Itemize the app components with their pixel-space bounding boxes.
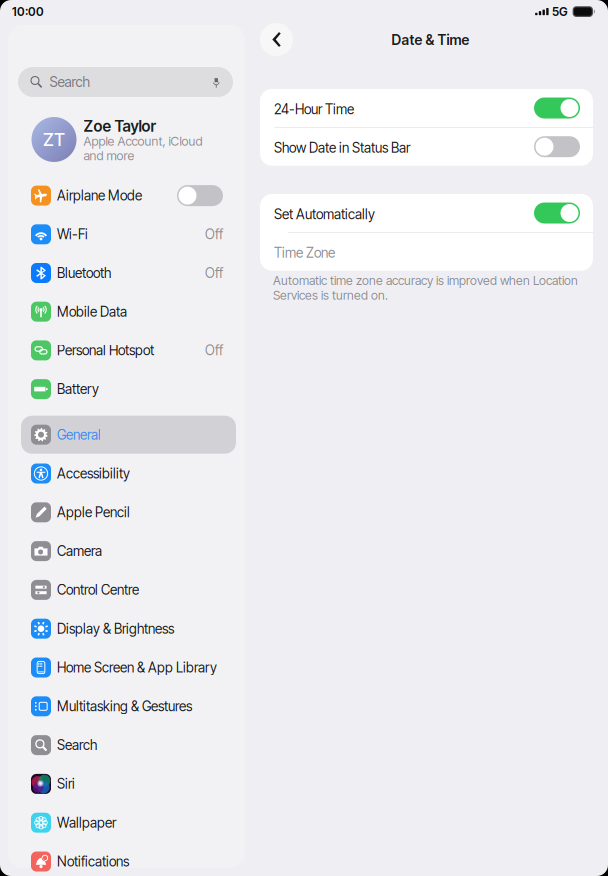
button[interactable]: Home Screen & App Library [21,648,236,686]
button[interactable]: Display & Brightness [21,610,236,648]
button[interactable]: Wallpaper [21,804,236,842]
button[interactable]: Accessibility [21,454,236,492]
staticText: Bluetooth [57,265,111,281]
staticText: Accessibility [57,465,130,482]
staticText: 24-Hour Time [274,101,354,117]
button[interactable]: ZT [31,117,246,162]
button[interactable]: Control Centre [21,571,236,609]
staticText: and more [83,148,134,163]
staticText: Search [57,737,97,753]
staticText: General [57,426,101,443]
staticText: ZT [43,129,65,150]
button[interactable]: General [21,416,236,454]
staticText: Off [205,342,223,359]
staticText: 5G [552,4,568,19]
button[interactable]: Battery [21,370,236,408]
staticText: Multitasking & Gestures [57,698,192,715]
button[interactable]: Show Date in Status Bar [260,128,593,166]
staticText: Siri [57,776,75,792]
button[interactable]: Set Automatically [260,194,593,232]
button[interactable]: Notifications [21,842,236,876]
staticText: Date & Time [391,31,469,48]
button[interactable]: 24-Hour Time [260,89,593,127]
staticText: Time Zone [274,245,335,261]
button[interactable]: Bluetooth [21,254,236,292]
staticText: Battery [57,381,99,397]
button[interactable]: Personal Hotspot [21,331,236,369]
button[interactable]: Wi-Fi [21,215,236,253]
staticText: Home Screen & App Library [57,659,217,676]
staticText: Personal Hotspot [57,342,154,359]
button[interactable]: Multitasking & Gestures [21,687,236,725]
button[interactable]: Search [21,726,236,764]
button[interactable]: Camera [21,532,236,570]
staticText: 10:00 [12,4,44,19]
staticText: Off [205,226,223,243]
staticText: Apple Account, iCloud [83,134,202,149]
staticText: Apple Pencil [57,504,130,521]
staticText: Airplane Mode [57,187,142,204]
button[interactable]: Siri [21,765,236,803]
staticText: Camera [57,543,102,559]
staticText: Show Date in Status Bar [274,140,410,156]
button[interactable]: Back [260,23,293,56]
button[interactable]: Apple Pencil [21,493,236,531]
staticText: Control Centre [57,582,139,598]
staticText: Display & Brightness [57,620,174,637]
staticText: Off [205,265,223,281]
staticText: Wi-Fi [57,226,88,243]
staticText: Search [49,74,90,90]
button[interactable]: Airplane Mode [21,177,236,215]
staticText: Wallpaper [57,814,116,831]
staticText: Set Automatically [274,206,375,222]
staticText: Zoe Taylor [83,117,156,135]
button[interactable]: Mobile Data [21,293,236,331]
staticText: Mobile Data [57,303,127,320]
staticText: Notifications [57,853,129,870]
staticText: Automatic time zone accuracy is improved… [273,273,578,303]
button[interactable]: Time Zone [260,233,593,271]
